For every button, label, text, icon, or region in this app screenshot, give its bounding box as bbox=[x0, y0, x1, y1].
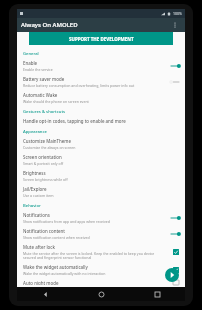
staticText: Notification content bbox=[23, 228, 66, 234]
staticText: General bbox=[23, 51, 39, 57]
button[interactable]: Screen orientation bbox=[17, 152, 185, 168]
button[interactable]: SUPPORT THE DEVELOPMENT bbox=[29, 32, 173, 45]
staticText: Smart & portrait only off bbox=[23, 161, 64, 166]
button[interactable]: Enable bbox=[17, 58, 185, 74]
button[interactable]: Customize MainTheme bbox=[17, 136, 185, 152]
button[interactable]: Toggle on bbox=[169, 62, 181, 70]
staticText: Screen orientation bbox=[23, 154, 62, 160]
button[interactable]: Notification content bbox=[17, 226, 185, 242]
staticText: Customize the always on screen bbox=[23, 145, 76, 150]
staticText: Mute after lock bbox=[23, 244, 55, 250]
staticText: 100% bbox=[173, 11, 182, 16]
staticText: Use a custom item bbox=[23, 193, 54, 198]
staticText: Handle opt-in codes, tapping to enable a… bbox=[23, 118, 126, 124]
staticText: Gestures & shortcuts bbox=[23, 109, 66, 115]
button[interactable]: Play bbox=[165, 268, 179, 282]
staticText: Notifications bbox=[23, 212, 50, 218]
button[interactable]: Auto night mode bbox=[17, 278, 185, 287]
button[interactable]: Toggle on bbox=[169, 214, 181, 222]
staticText: Auto night mode bbox=[23, 280, 59, 285]
staticText: Wake the widget automatically with no in… bbox=[23, 271, 106, 276]
staticText: Jail/Explore bbox=[23, 186, 47, 192]
button[interactable]: Back bbox=[17, 287, 73, 301]
button[interactable]: Automatic Wake bbox=[17, 90, 185, 106]
button[interactable]: Toggle on bbox=[169, 230, 181, 238]
button[interactable]: Notifications bbox=[17, 210, 185, 226]
button[interactable]: Checked bbox=[171, 265, 181, 275]
staticText: Enable the service bbox=[23, 67, 53, 72]
button[interactable]: Battery saver mode bbox=[17, 74, 185, 90]
staticText: Wake should the phone on screen event bbox=[23, 99, 89, 104]
button[interactable]: Handle opt-in codes, tapping to enable a… bbox=[17, 116, 185, 126]
staticText: Show notifications from app and apps whe… bbox=[23, 219, 110, 224]
staticText: Behavior bbox=[23, 203, 41, 209]
staticText: Customize MainTheme bbox=[23, 138, 72, 144]
button[interactable]: Toggle off bbox=[169, 78, 181, 86]
staticText: Wake the widget automatically bbox=[23, 264, 88, 270]
staticText: Appearance bbox=[23, 129, 47, 135]
button[interactable]: Mute after lock bbox=[17, 242, 185, 262]
button[interactable]: More options bbox=[169, 19, 181, 31]
staticText: Always On AMOLED bbox=[21, 21, 78, 29]
staticText: SUPPORT THE DEVELOPMENT bbox=[69, 36, 134, 42]
staticText: Automatic Wake bbox=[23, 92, 58, 98]
staticText: Screen brightness while off bbox=[23, 177, 68, 182]
staticText: Mute the service after the screen is loc… bbox=[23, 251, 167, 260]
staticText: Show notification content when received bbox=[23, 235, 90, 240]
button[interactable]: Recents bbox=[129, 287, 185, 301]
button[interactable]: Jail/Explore bbox=[17, 184, 185, 200]
staticText: Enable bbox=[23, 60, 38, 66]
button[interactable]: Brightness bbox=[17, 168, 185, 184]
button[interactable]: Checked bbox=[171, 247, 181, 257]
button[interactable]: Home bbox=[73, 287, 129, 301]
button[interactable]: Unchecked bbox=[171, 280, 181, 285]
staticText: Brightness bbox=[23, 170, 46, 176]
button[interactable]: Wake the widget automatically bbox=[17, 262, 185, 278]
staticText: Reduce battery consumption and overheati… bbox=[23, 83, 135, 88]
staticText: Battery saver mode bbox=[23, 76, 65, 82]
